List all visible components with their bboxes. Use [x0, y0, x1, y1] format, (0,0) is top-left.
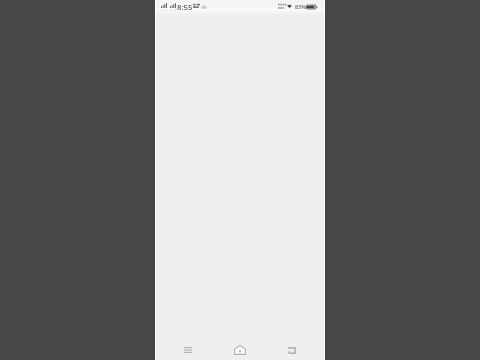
- button[interactable]: Recent apps: [178, 340, 198, 360]
- staticText: 8:55: [177, 2, 193, 13]
- staticText: 83%: [295, 3, 306, 10]
- button[interactable]: Home: [230, 340, 250, 360]
- button[interactable]: Back: [282, 340, 302, 360]
